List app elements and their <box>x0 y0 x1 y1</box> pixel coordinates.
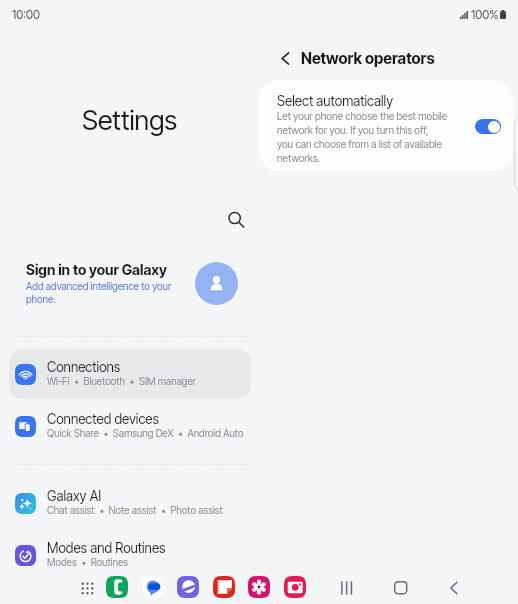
button[interactable]: Recents <box>334 576 358 600</box>
staticText: 100% <box>471 7 499 22</box>
button[interactable]: Messages <box>142 576 164 598</box>
button[interactable]: Connections <box>9 349 251 399</box>
staticText: Galaxy AI <box>47 488 102 504</box>
staticText: Chat assist • Note assist • Photo assist <box>47 504 223 516</box>
staticText: Let your phone choose the best mobile ne… <box>277 110 457 164</box>
staticText: Connected devices <box>47 411 159 427</box>
button[interactable]: Notes <box>213 576 235 598</box>
staticText: Add advanced intelligence to your phone. <box>26 280 176 306</box>
staticText: Network operators <box>301 49 435 68</box>
button[interactable]: Search <box>225 209 247 231</box>
staticText: Modes and Routines <box>47 540 166 556</box>
button[interactable]: Connected devices <box>9 401 251 451</box>
staticText: Connections <box>47 359 121 375</box>
button[interactable]: Phone <box>106 576 128 598</box>
button[interactable]: Back <box>443 576 467 600</box>
button[interactable]: Back <box>272 45 298 71</box>
staticText: Quick Share • Samsung DeX • Android Auto <box>47 427 244 439</box>
button[interactable]: Select automatically <box>259 80 513 171</box>
button[interactable]: Apps <box>76 577 98 599</box>
staticText: Select automatically <box>277 93 394 109</box>
button[interactable]: Sign in to your Galaxy <box>0 254 259 312</box>
button[interactable]: Gallery <box>248 576 270 598</box>
staticText: Wi-Fi • Bluetooth • SIM manager <box>47 375 197 387</box>
staticText: Settings <box>82 104 178 137</box>
button[interactable]: Home <box>388 576 412 600</box>
button[interactable]: Camera <box>284 576 306 598</box>
button[interactable]: Select automatically toggle <box>475 119 501 134</box>
button[interactable]: Modes and Routines <box>9 530 251 580</box>
staticText: Sign in to your Galaxy <box>26 261 167 278</box>
staticText: Modes • Routines <box>47 556 128 568</box>
button[interactable]: Galaxy AI <box>9 478 251 528</box>
button[interactable]: Internet <box>177 576 199 598</box>
staticText: 10:00 <box>12 7 40 22</box>
